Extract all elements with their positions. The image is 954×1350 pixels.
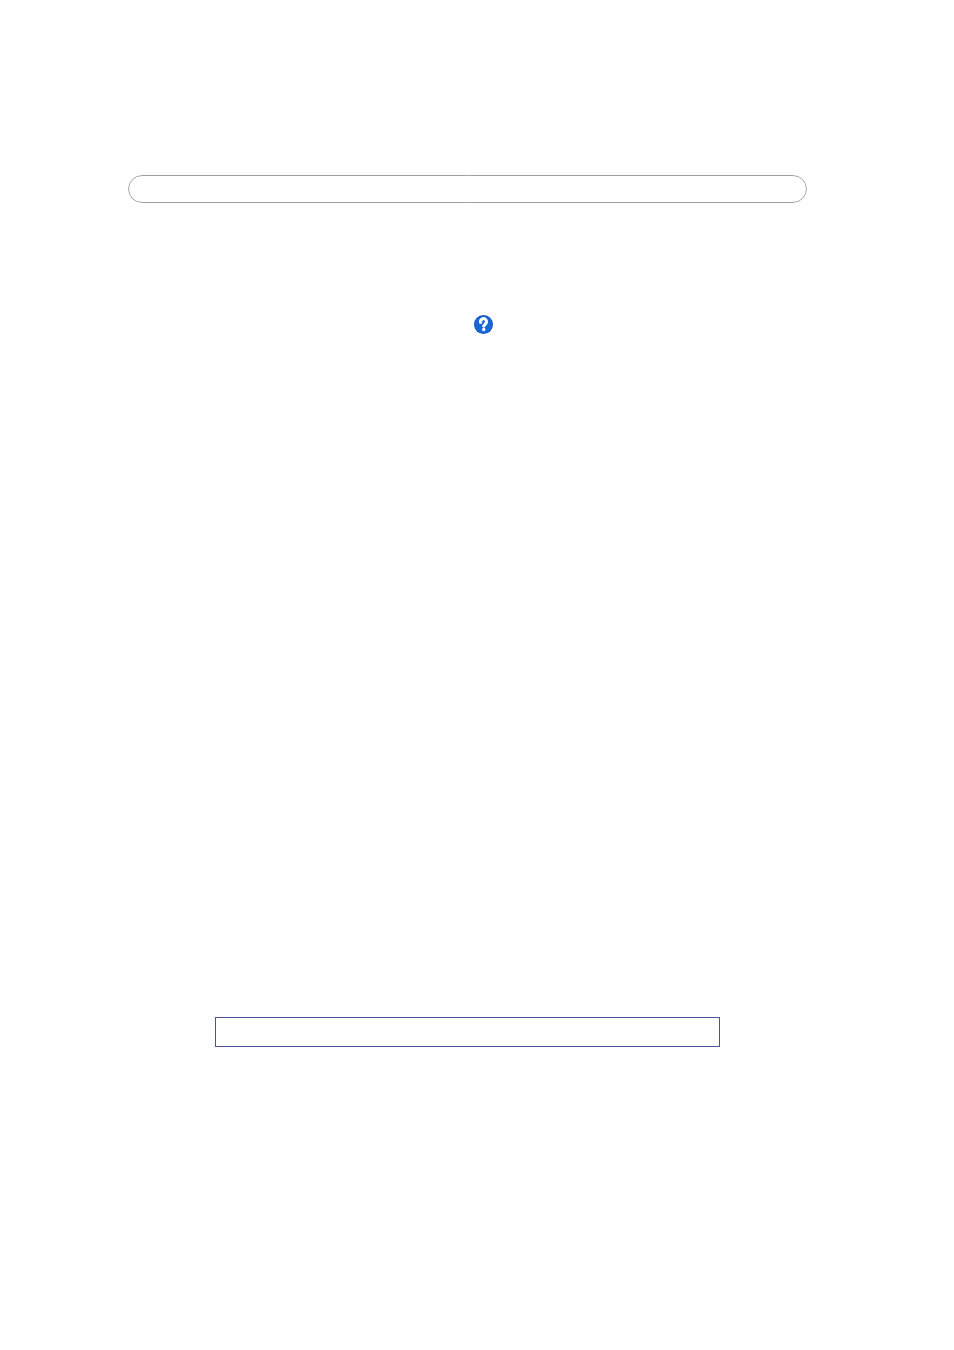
button[interactable]: Text field	[128, 175, 807, 203]
button[interactable]: Help	[474, 315, 493, 334]
button[interactable]: Submit	[215, 1017, 720, 1047]
